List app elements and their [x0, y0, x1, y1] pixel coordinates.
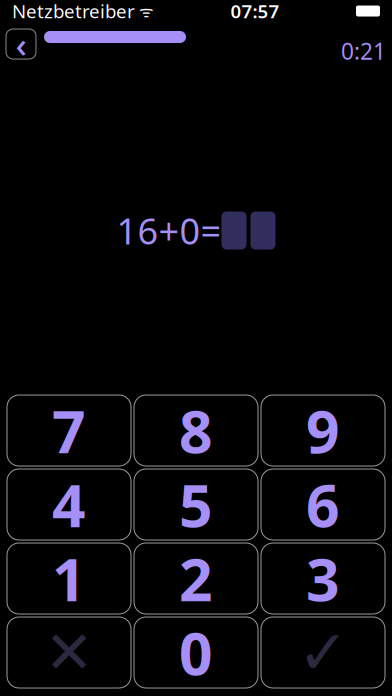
button[interactable]: 9 [261, 395, 385, 466]
staticText: 5 [179, 465, 213, 543]
staticText: 0 [179, 613, 213, 691]
staticText: 9 [306, 391, 340, 469]
button[interactable]: 8 [134, 395, 258, 466]
button[interactable]: ✕ [7, 617, 131, 688]
button[interactable]: ✓ [261, 617, 385, 688]
staticText: ᯤ [135, 0, 154, 22]
button[interactable]: 7 [7, 395, 131, 466]
button[interactable]: Back [6, 29, 36, 59]
staticText: 4 [52, 465, 86, 543]
button[interactable]: 3 [261, 543, 385, 614]
button[interactable]: 1 [7, 543, 131, 614]
staticText: Netzbetreiber [12, 0, 135, 23]
staticText: 6 [306, 465, 340, 543]
staticText: 07:57 [230, 0, 279, 23]
staticText: 7 [52, 391, 86, 469]
staticText: ✕ [44, 619, 93, 686]
staticText: 8 [179, 391, 213, 469]
button[interactable]: 2 [134, 543, 258, 614]
staticText: ✓ [297, 618, 348, 687]
staticText: 0:21 [341, 36, 386, 66]
staticText: 16+0= [116, 207, 221, 254]
button[interactable]: 6 [261, 469, 385, 540]
staticText: 3 [306, 539, 340, 617]
staticText: ‹ [15, 21, 26, 67]
button[interactable]: 0 [134, 617, 258, 688]
button[interactable]: 5 [134, 469, 258, 540]
button[interactable]: 4 [7, 469, 131, 540]
staticText: 1 [52, 539, 86, 617]
staticText: 2 [179, 539, 213, 617]
